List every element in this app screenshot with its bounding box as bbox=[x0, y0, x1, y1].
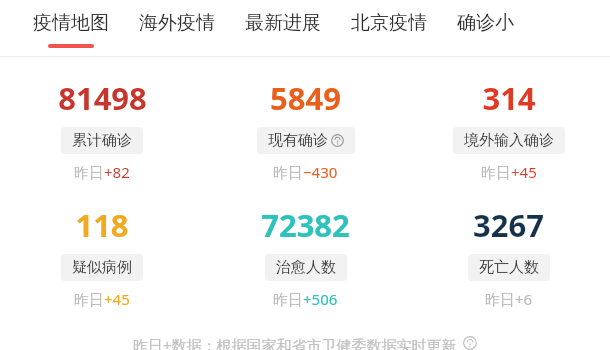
staticText: 3267 bbox=[473, 204, 544, 246]
button[interactable]: 确诊小 bbox=[457, 0, 514, 48]
staticText: 昨日+82 bbox=[74, 162, 130, 182]
button[interactable]: 疫情地图 bbox=[33, 0, 109, 48]
staticText: 海外疫情 bbox=[139, 11, 215, 35]
staticText: 5849 bbox=[270, 77, 341, 119]
other: 说明 bbox=[331, 134, 344, 147]
button[interactable]: 118 bbox=[0, 204, 204, 309]
staticText: 累计确诊 bbox=[72, 131, 132, 150]
staticText: 北京疫情 bbox=[351, 11, 427, 35]
staticText: 现有确诊 bbox=[268, 131, 328, 150]
button[interactable]: 314 bbox=[407, 77, 610, 182]
staticText: 昨日+506 bbox=[273, 289, 338, 309]
staticText: 境外输入确诊 bbox=[464, 131, 554, 150]
button[interactable]: 最新进展 bbox=[245, 0, 321, 48]
staticText: 昨日−430 bbox=[273, 162, 338, 182]
staticText: 最新进展 bbox=[245, 11, 321, 35]
staticText: 昨日+45 bbox=[481, 162, 537, 182]
button[interactable]: 72382 bbox=[204, 204, 407, 309]
button[interactable]: 海外疫情 bbox=[139, 0, 215, 48]
staticText: 疑似病例 bbox=[72, 258, 132, 277]
button[interactable]: 昨日+数据：根据国家和省市卫健委数据实时更新 bbox=[133, 335, 477, 350]
staticText: 昨日+6 bbox=[485, 289, 533, 309]
staticText: 确诊小 bbox=[457, 11, 514, 35]
staticText: 疫情地图 bbox=[33, 11, 109, 35]
button[interactable]: 3267 bbox=[407, 204, 610, 309]
staticText: 昨日+数据：根据国家和省市卫健委数据实时更新 bbox=[133, 335, 457, 350]
other: 说明 bbox=[463, 336, 477, 350]
button[interactable]: 81498 bbox=[0, 77, 204, 182]
staticText: 死亡人数 bbox=[479, 258, 539, 277]
staticText: 314 bbox=[482, 77, 536, 119]
staticText: 72382 bbox=[261, 204, 350, 246]
button[interactable]: 5849 bbox=[204, 77, 407, 182]
staticText: 昨日+45 bbox=[74, 289, 130, 309]
staticText: 治愈人数 bbox=[276, 258, 336, 277]
staticText: 118 bbox=[75, 204, 129, 246]
button[interactable]: 北京疫情 bbox=[351, 0, 427, 48]
staticText: 81498 bbox=[58, 77, 147, 119]
